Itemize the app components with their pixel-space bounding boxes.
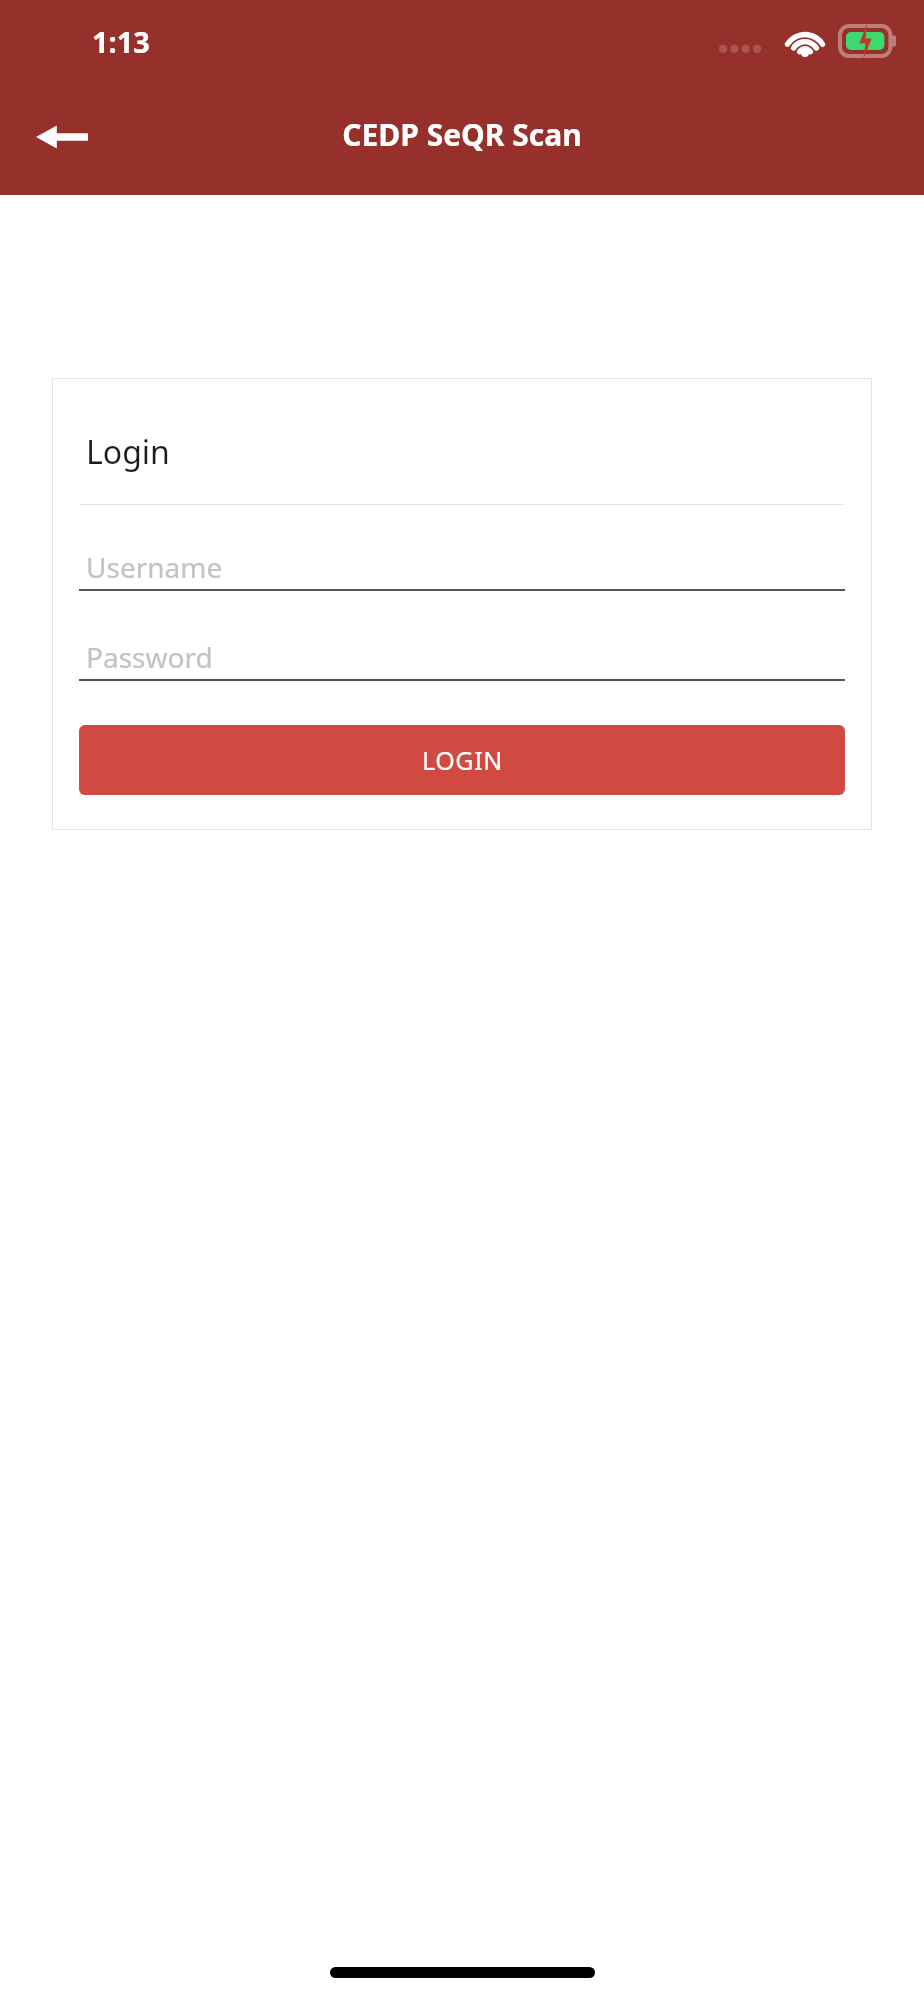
button[interactable]: LOGIN (79, 725, 845, 795)
staticText: CEDP SeQR Scan (342, 114, 582, 155)
button[interactable]: Username (79, 545, 845, 591)
staticText: Password (86, 638, 213, 676)
staticText: 1:13 (92, 22, 150, 61)
button[interactable]: Password (79, 635, 845, 681)
staticText: LOGIN (422, 743, 503, 777)
button[interactable]: Back (22, 97, 102, 177)
staticText: Login (86, 430, 170, 474)
staticText: Username (86, 548, 223, 586)
